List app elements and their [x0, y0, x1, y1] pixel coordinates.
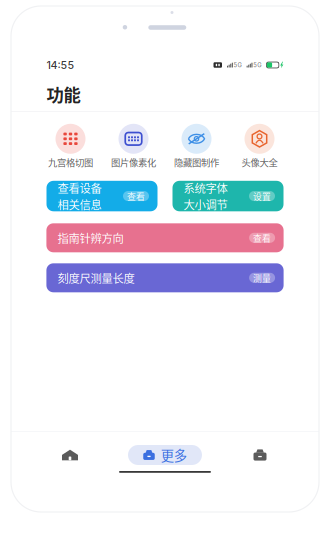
button[interactable]: 头像大全 — [228, 124, 291, 169]
staticText: 系统字体 — [183, 180, 227, 196]
staticText: 九宫格切图 — [48, 155, 93, 169]
staticText: 查看 — [253, 231, 271, 244]
staticText: 查看 — [127, 190, 145, 202]
staticText: 更多 — [161, 445, 187, 465]
staticText: 大小调节 — [183, 196, 227, 212]
staticText: 5G — [234, 61, 242, 69]
staticText: 5G — [253, 61, 261, 69]
staticText: 指南针辨方向 — [57, 230, 123, 246]
button[interactable]: 刻度尺测量长度 — [46, 263, 284, 292]
staticText: 图片像素化 — [111, 155, 156, 169]
button[interactable]: 查看设备 — [46, 181, 157, 211]
staticText: 相关信息 — [57, 196, 101, 212]
staticText: 头像大全 — [241, 155, 277, 169]
staticText: 测量 — [253, 271, 271, 284]
button[interactable]: 九宫格切图 — [39, 124, 102, 169]
button[interactable]: 工具箱 — [228, 445, 291, 465]
staticText: 隐藏图制作 — [174, 155, 219, 169]
staticText: 设置 — [253, 190, 271, 202]
staticText: 功能 — [46, 81, 80, 107]
button[interactable]: 指南针辨方向 — [46, 223, 284, 252]
button[interactable]: 系统字体 — [172, 181, 283, 211]
button[interactable]: 图片像素化 — [102, 124, 165, 169]
staticText: 查看设备 — [57, 180, 101, 196]
button[interactable]: 首页 — [38, 445, 101, 465]
button[interactable]: 隐藏图制作 — [165, 124, 228, 169]
staticText: 14:55 — [46, 58, 74, 71]
button[interactable]: 更多 — [128, 445, 202, 465]
staticText: 刻度尺测量长度 — [57, 270, 134, 286]
